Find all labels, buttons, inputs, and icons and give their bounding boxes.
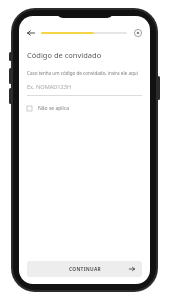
button[interactable]: Não se aplica (27, 105, 70, 112)
staticText: Não se aplica (38, 105, 70, 112)
staticText: Ex. NOMAD123H (27, 83, 72, 91)
button[interactable]: CONTINUAR (27, 261, 142, 277)
staticText: Código de convidado (27, 50, 102, 60)
button[interactable]: Ajuda (132, 27, 144, 39)
staticText: CONTINUAR (69, 266, 101, 273)
button[interactable]: Voltar (25, 27, 37, 39)
button[interactable]: Ex. NOMAD123H (27, 83, 142, 96)
staticText: Caso tenha um código de convidado, insir… (27, 70, 138, 76)
